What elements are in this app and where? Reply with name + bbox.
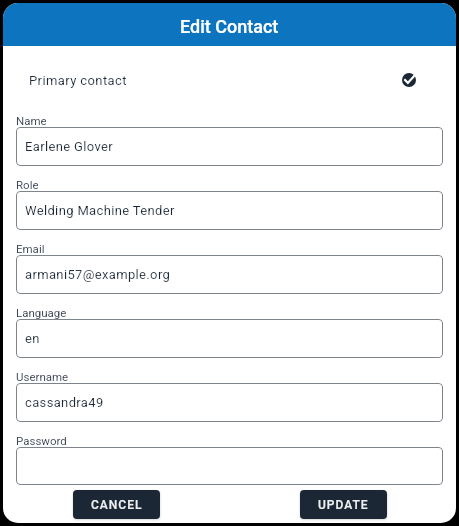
- staticText: Password: [16, 434, 67, 447]
- staticText: Username: [16, 370, 69, 383]
- staticText: Language: [16, 306, 67, 319]
- staticText: Earlene Glover: [25, 139, 113, 154]
- staticText: Welding Machine Tender: [25, 203, 175, 218]
- button[interactable]: Primary contact: [16, 68, 443, 92]
- button[interactable]: UPDATE: [300, 490, 387, 519]
- staticText: Email: [16, 242, 45, 255]
- button[interactable]: en: [16, 319, 443, 358]
- staticText: en: [25, 331, 40, 346]
- staticText: CANCEL: [91, 498, 143, 512]
- staticText: UPDATE: [318, 498, 369, 512]
- other: Primary contact enabled: [402, 73, 416, 87]
- staticText: armani57@example.org: [25, 267, 171, 282]
- button[interactable]: Welding Machine Tender: [16, 191, 443, 230]
- staticText: Role: [16, 178, 39, 191]
- button[interactable]: cassandra49: [16, 383, 443, 422]
- staticText: cassandra49: [25, 395, 104, 410]
- button[interactable]: [16, 447, 443, 485]
- button[interactable]: Earlene Glover: [16, 127, 443, 166]
- button[interactable]: CANCEL: [73, 490, 160, 519]
- staticText: Primary contact: [29, 73, 127, 88]
- staticText: Edit Contact: [180, 16, 279, 37]
- button[interactable]: armani57@example.org: [16, 255, 443, 294]
- staticText: Name: [16, 114, 47, 127]
